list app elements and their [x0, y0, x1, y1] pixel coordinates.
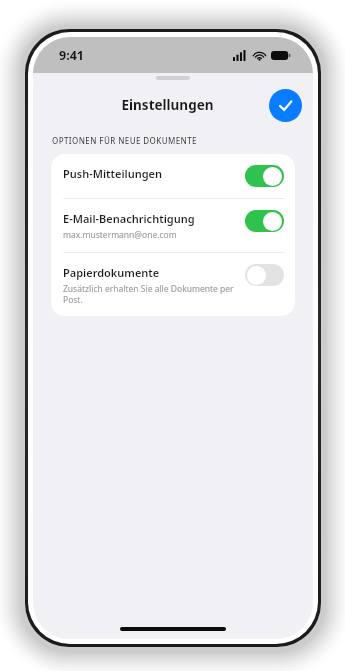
staticText: Push-Mitteilungen: [63, 166, 163, 181]
staticText: E-Mail-Benachrichtigung: [63, 211, 195, 226]
staticText: max.mustermann@one.com: [63, 229, 177, 241]
staticText: Einstellungen: [121, 96, 214, 114]
button[interactable]: Aus: [245, 264, 284, 286]
staticText: 9:41: [59, 47, 84, 64]
button[interactable]: Papierdokumente: [51, 253, 295, 316]
button[interactable]: Bestätigen: [269, 89, 302, 122]
button[interactable]: E-Mail-Benachrichtigung: [51, 199, 295, 252]
button[interactable]: Ein: [245, 210, 284, 232]
staticText: Zusätzlich erhalten Sie alle Dokumente p…: [63, 283, 237, 305]
staticText: Papierdokumente: [63, 265, 160, 280]
button[interactable]: Push-Mitteilungen: [51, 154, 295, 198]
staticText: OPTIONEN FÜR NEUE DOKUMENTE: [52, 135, 197, 146]
button[interactable]: Ein: [245, 165, 284, 187]
